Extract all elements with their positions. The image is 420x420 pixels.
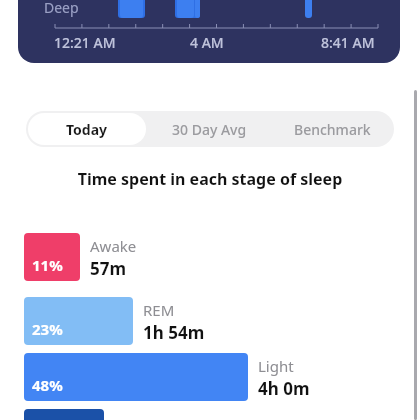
staticText: Deep xyxy=(44,0,79,17)
staticText: Time spent in each stage of sleep xyxy=(0,168,420,190)
staticText: 30 Day Avg xyxy=(172,120,247,139)
staticText: 1h 54m xyxy=(143,321,205,344)
staticText: 57m xyxy=(90,257,127,280)
button[interactable]: 23% xyxy=(24,297,205,345)
button[interactable]: Deep xyxy=(18,0,400,63)
staticText: Today xyxy=(66,120,108,139)
button[interactable]: Benchmark xyxy=(273,113,392,145)
staticText: 4 AM xyxy=(190,33,224,52)
staticText: 48% xyxy=(32,375,63,395)
staticText: 12:21 AM xyxy=(54,33,116,52)
button[interactable]: Today xyxy=(28,113,146,145)
staticText: 23% xyxy=(32,319,63,339)
button[interactable]: 48% xyxy=(24,353,310,401)
button[interactable]: 11% xyxy=(24,233,137,281)
staticText: Light xyxy=(258,356,294,376)
staticText: REM xyxy=(143,300,175,320)
button[interactable]: 30 Day Avg xyxy=(150,113,269,145)
staticText: 8:41 AM xyxy=(321,33,375,52)
staticText: 4h 0m xyxy=(258,377,310,400)
staticText: Benchmark xyxy=(294,120,371,139)
button[interactable]: Deep xyxy=(24,409,152,420)
staticText: Awake xyxy=(90,236,137,256)
staticText: 11% xyxy=(32,255,63,275)
